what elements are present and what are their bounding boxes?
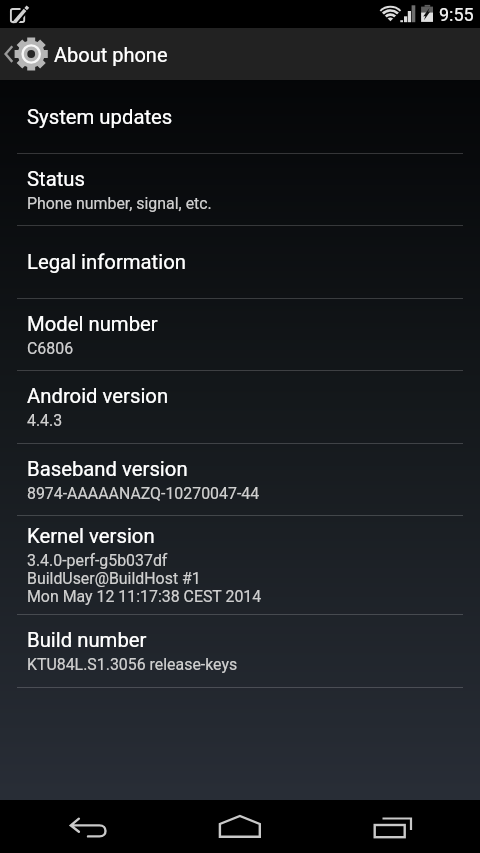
staticText: 9:55 — [439, 4, 474, 25]
staticText: Legal information — [27, 250, 186, 274]
button[interactable]: Android version — [0, 371, 480, 443]
staticText: Model number — [27, 312, 158, 336]
button[interactable]: Back — [0, 800, 160, 853]
staticText: 3.4.0-perf-g5b037df BuildUser@BuildHost … — [27, 551, 262, 606]
staticText: KTU84L.S1.3056 release-keys — [27, 655, 238, 674]
button[interactable]: Model number — [0, 299, 480, 370]
staticText: Phone number, signal, etc. — [27, 194, 212, 213]
staticText: Android version — [27, 384, 169, 408]
button[interactable]: Recent apps — [320, 800, 480, 853]
button[interactable]: Baseband version — [0, 444, 480, 515]
button[interactable]: Legal information — [0, 226, 480, 298]
staticText: C6806 — [27, 339, 74, 358]
staticText: Status — [27, 167, 86, 191]
staticText: Build number — [27, 628, 147, 652]
button[interactable]: Back to Settings — [0, 28, 50, 80]
staticText: 8974-AAAAANAZQ-10270047-44 — [27, 484, 260, 503]
button[interactable]: System updates — [0, 80, 480, 153]
staticText: Baseband version — [27, 457, 188, 481]
button[interactable]: Status — [0, 154, 480, 225]
button[interactable]: Build number — [0, 615, 480, 687]
staticText: 4.4.3 — [27, 411, 63, 430]
staticText: About phone — [54, 43, 168, 66]
staticText: System updates — [27, 105, 173, 129]
button[interactable]: Kernel version — [0, 516, 480, 614]
staticText: Kernel version — [27, 524, 155, 548]
button[interactable]: Home — [160, 800, 320, 853]
